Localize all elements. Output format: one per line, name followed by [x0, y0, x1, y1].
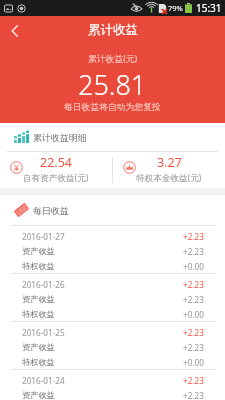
- staticText: 特权收益: [22, 261, 55, 271]
- staticText: 资产收益: [22, 342, 55, 352]
- staticText: 25.81: [78, 66, 147, 103]
- button[interactable]: 2016-01-24: [0, 369, 225, 400]
- staticText: 2016-01-25: [22, 327, 65, 338]
- staticText: +2.23: [183, 375, 204, 386]
- button[interactable]: 2016-01-25: [0, 321, 225, 369]
- staticText: 每日收益将自动为您复投: [64, 102, 161, 113]
- staticText: 自有资产收益(元): [23, 172, 89, 184]
- staticText: 2016-01-27: [22, 231, 65, 242]
- staticText: +2.23: [183, 327, 204, 338]
- staticText: 累计收益明细: [33, 132, 87, 143]
- staticText: 15:31: [196, 1, 222, 15]
- staticText: 22.54: [40, 154, 72, 171]
- staticText: 每日收益: [33, 205, 69, 216]
- staticText: +2.23: [183, 279, 204, 290]
- staticText: 资产收益: [22, 246, 55, 256]
- staticText: +2.23: [183, 294, 204, 305]
- staticText: 79%: [168, 3, 183, 13]
- staticText: 特权收益: [22, 357, 55, 367]
- button[interactable]: 2016-01-27: [0, 225, 225, 273]
- staticText: 资产收益: [22, 390, 55, 400]
- staticText: +0.00: [183, 309, 204, 320]
- staticText: +0.00: [183, 357, 204, 368]
- staticText: 2016-01-24: [22, 375, 65, 386]
- staticText: +0.00: [183, 261, 204, 272]
- button[interactable]: 2016-01-26: [0, 273, 225, 321]
- staticText: 2016-01-26: [22, 279, 65, 290]
- staticText: 特权本金收益(元): [136, 172, 202, 184]
- staticText: +2.23: [183, 231, 204, 242]
- staticText: 累计收益: [88, 22, 138, 38]
- staticText: 累计收益(元): [88, 53, 138, 65]
- staticText: 特权收益: [22, 309, 55, 319]
- staticText: 3.27: [157, 154, 182, 171]
- staticText: +2.23: [183, 390, 204, 400]
- staticText: +2.23: [183, 246, 204, 257]
- staticText: +2.23: [183, 342, 204, 353]
- button[interactable]: Back: [0, 16, 30, 46]
- staticText: 资产收益: [22, 294, 55, 304]
